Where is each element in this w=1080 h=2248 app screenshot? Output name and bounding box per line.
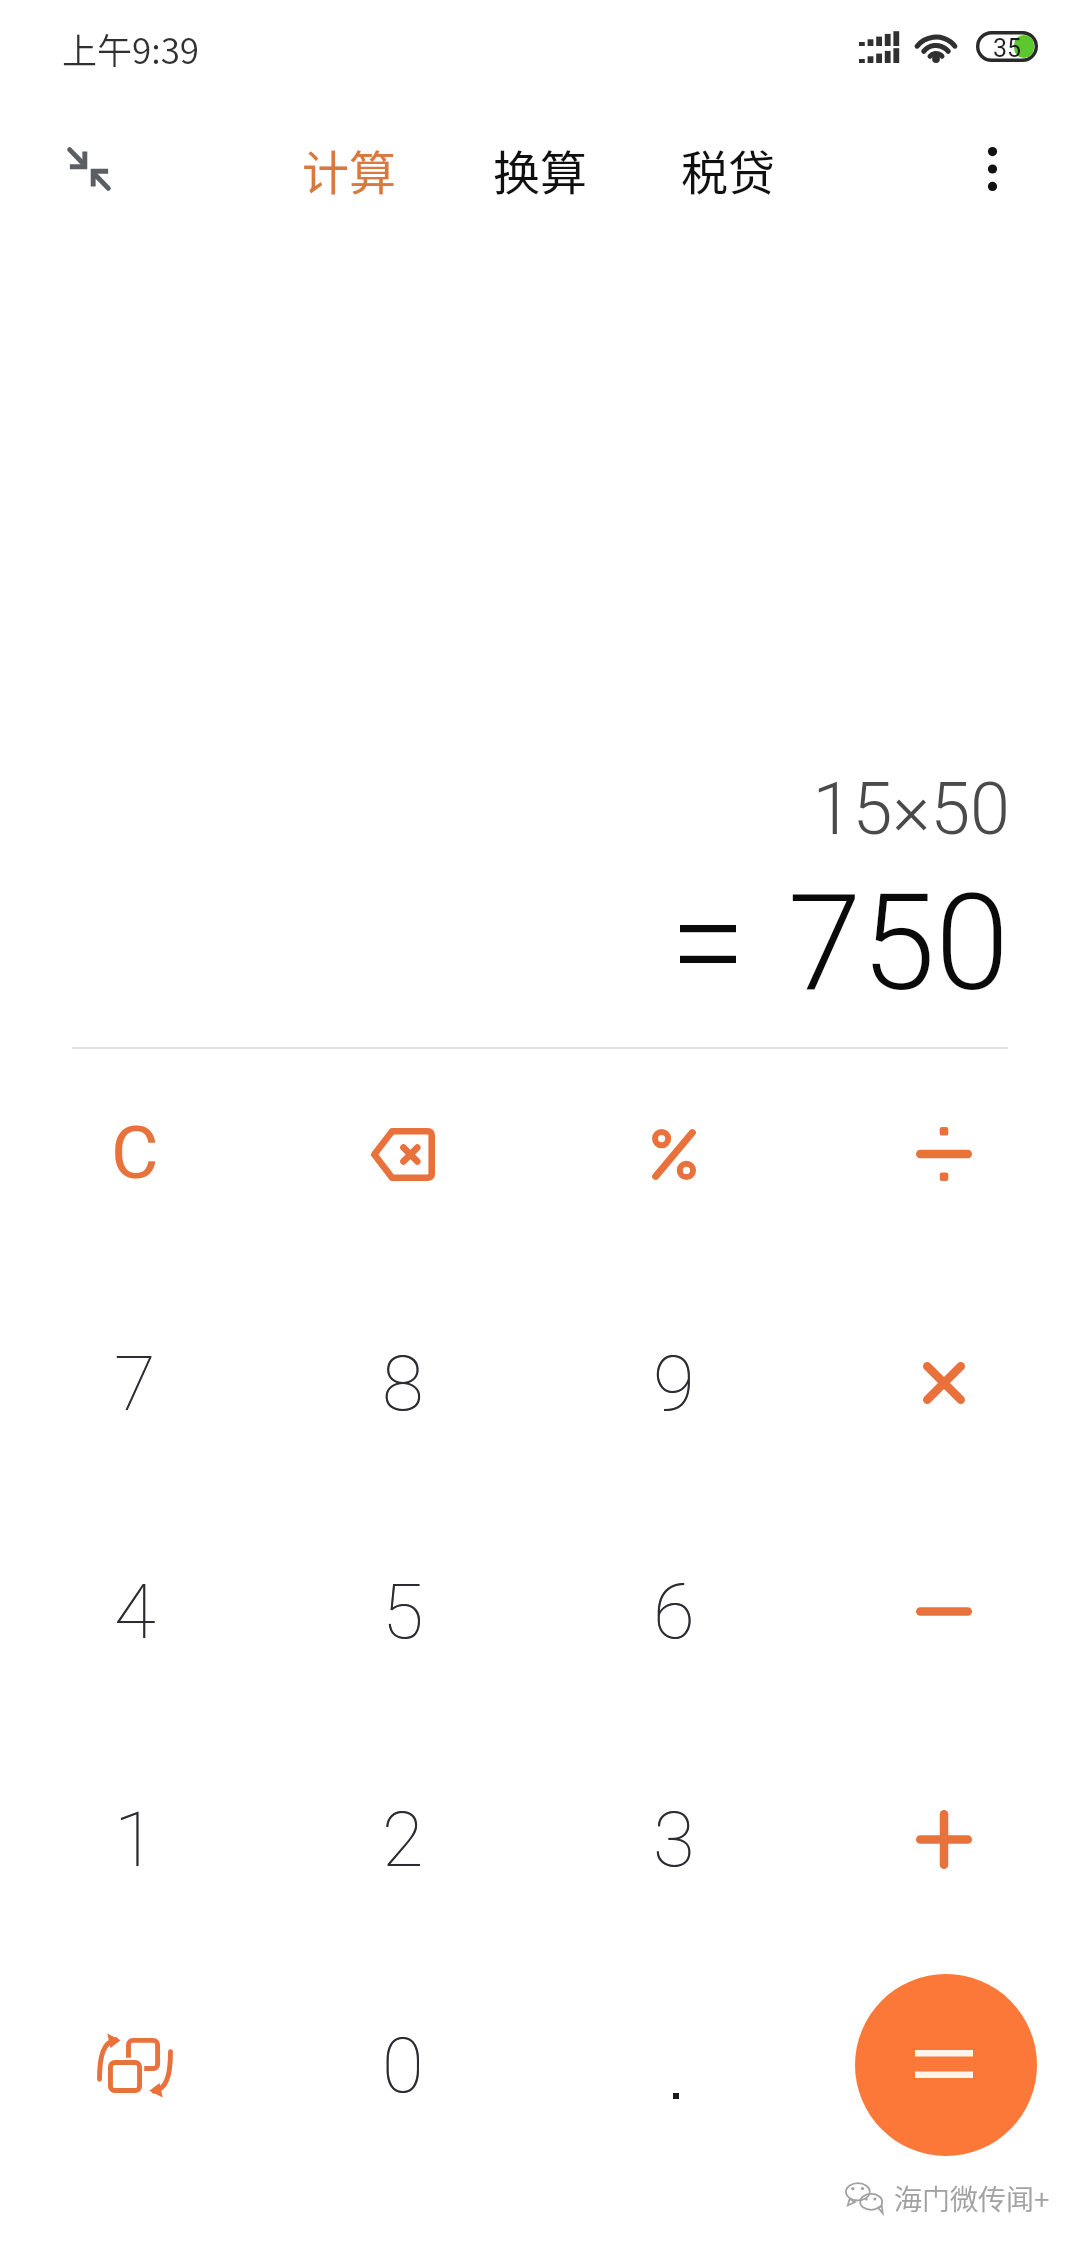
staticText: 5 bbox=[382, 1567, 424, 1656]
staticText: 35 bbox=[993, 34, 1022, 63]
button[interactable]: 换算 bbox=[460, 109, 620, 229]
staticText: 3 bbox=[653, 1795, 695, 1884]
staticText: 2 bbox=[382, 1795, 424, 1884]
staticText: 4 bbox=[114, 1567, 156, 1656]
button[interactable]: 计算 bbox=[269, 109, 429, 229]
button[interactable]: Minus bbox=[810, 1497, 1078, 1725]
staticText: 750 bbox=[0, 866, 1009, 1022]
staticText: 1 bbox=[114, 1795, 156, 1884]
button[interactable]: Unit conversion bbox=[1, 1951, 269, 2179]
staticText: 15×50 bbox=[0, 767, 1010, 851]
button[interactable]: Backspace bbox=[269, 1040, 537, 1268]
button[interactable]: 6 bbox=[540, 1497, 808, 1725]
staticText: 9 bbox=[653, 1339, 695, 1428]
button[interactable]: 7 bbox=[1, 1269, 269, 1497]
button[interactable]: 4 bbox=[1, 1497, 269, 1725]
staticText: 0 bbox=[382, 2021, 424, 2110]
staticText: 7 bbox=[114, 1339, 156, 1428]
button[interactable]: Equals bbox=[855, 1974, 1037, 2156]
staticText: 换算 bbox=[493, 135, 587, 203]
staticText: 4 bbox=[114, 1567, 156, 1656]
button[interactable]: 0 bbox=[269, 1951, 537, 2179]
staticText: C bbox=[111, 1110, 159, 1196]
staticText: 9 bbox=[653, 1339, 695, 1428]
staticText: 7 bbox=[114, 1339, 156, 1428]
staticText: 上午9:39 bbox=[62, 23, 200, 74]
staticText: 6 bbox=[653, 1567, 695, 1656]
button[interactable]: Multiply bbox=[810, 1269, 1078, 1497]
staticText: 2 bbox=[382, 1795, 424, 1884]
button[interactable]: 2 bbox=[269, 1725, 537, 1953]
button[interactable]: Collapse bbox=[29, 109, 149, 229]
button[interactable]: Plus bbox=[810, 1725, 1078, 1953]
staticText: 1 bbox=[114, 1795, 156, 1884]
staticText: 8 bbox=[382, 1339, 424, 1428]
button[interactable]: Percent bbox=[540, 1040, 808, 1268]
button[interactable]: 1 bbox=[1, 1725, 269, 1953]
staticText: 5 bbox=[382, 1567, 424, 1656]
staticText: 税贷 bbox=[681, 135, 775, 203]
button[interactable]: 5 bbox=[269, 1497, 537, 1725]
button[interactable]: 9 bbox=[540, 1269, 808, 1497]
button[interactable]: Decimal point bbox=[540, 1951, 808, 2179]
button[interactable]: 税贷 bbox=[648, 109, 808, 229]
staticText: 0 bbox=[382, 2021, 424, 2110]
button[interactable]: More options bbox=[932, 109, 1052, 229]
button[interactable]: Divide bbox=[810, 1040, 1078, 1268]
staticText: 计算 bbox=[302, 135, 396, 203]
button[interactable]: 8 bbox=[269, 1269, 537, 1497]
staticText: 8 bbox=[382, 1339, 424, 1428]
button[interactable]: Clear bbox=[1, 1040, 269, 1268]
staticText: 6 bbox=[653, 1567, 695, 1656]
staticText: 3 bbox=[653, 1795, 695, 1884]
button[interactable]: 3 bbox=[540, 1725, 808, 1953]
staticText: 海门微传闻+ bbox=[894, 2178, 1050, 2219]
